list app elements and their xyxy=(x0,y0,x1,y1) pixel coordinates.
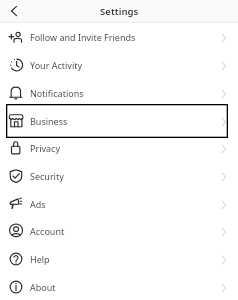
staticText: Privacy xyxy=(30,142,222,154)
button[interactable]: Follow and Invite Friends xyxy=(0,23,238,51)
button[interactable]: Account xyxy=(0,217,238,245)
staticText: Security xyxy=(30,170,222,182)
staticText: Account xyxy=(30,225,222,237)
button[interactable]: Privacy xyxy=(0,134,238,162)
button[interactable]: Back xyxy=(2,0,26,22)
button[interactable]: Security xyxy=(0,162,238,190)
staticText: Settings xyxy=(100,5,139,18)
staticText: Business xyxy=(30,115,222,127)
staticText: Notifications xyxy=(30,87,222,99)
button[interactable]: About xyxy=(0,273,238,300)
button[interactable]: Ads xyxy=(0,190,238,218)
staticText: Your Activity xyxy=(30,59,222,71)
staticText: Help xyxy=(30,253,222,265)
staticText: Ads xyxy=(30,198,222,210)
button[interactable]: Notifications xyxy=(0,79,238,107)
staticText: Follow and Invite Friends xyxy=(30,31,222,43)
button[interactable]: Your Activity xyxy=(0,51,238,79)
button[interactable]: Business xyxy=(0,107,238,135)
button[interactable]: Help xyxy=(0,245,238,273)
staticText: About xyxy=(30,281,222,293)
